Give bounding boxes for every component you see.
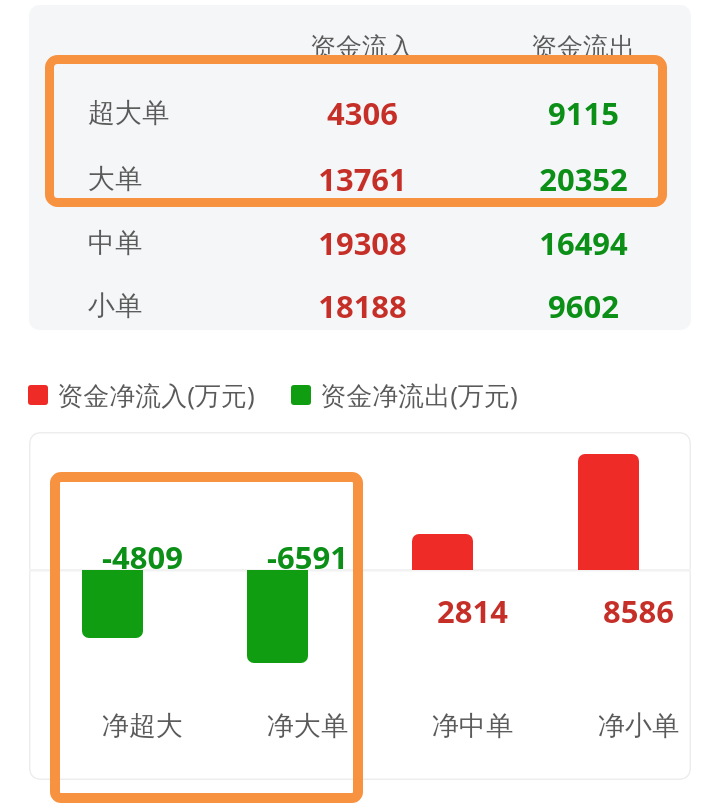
button[interactable]: 中单 bbox=[29, 219, 691, 267]
staticText: 8586 bbox=[603, 590, 674, 632]
staticText: 16494 bbox=[539, 222, 628, 264]
button[interactable]: -4809 bbox=[29, 432, 691, 780]
button[interactable]: 资金流入 bbox=[29, 5, 691, 330]
staticText: 2814 bbox=[437, 590, 508, 632]
staticText: 资金流出 bbox=[531, 31, 635, 64]
staticText: 大单 bbox=[88, 162, 142, 196]
staticText: -4809 bbox=[102, 536, 183, 578]
staticText: 19308 bbox=[318, 222, 407, 264]
staticText: -6591 bbox=[267, 536, 348, 578]
button[interactable]: Highlight super-large and large order ro… bbox=[45, 55, 667, 207]
staticText: 13761 bbox=[318, 158, 407, 200]
staticText: 净超大 bbox=[102, 709, 183, 743]
staticText: 4306 bbox=[327, 92, 398, 134]
staticText: 超大单 bbox=[88, 96, 169, 130]
staticText: 18188 bbox=[318, 285, 407, 327]
staticText: 小单 bbox=[88, 289, 142, 323]
staticText: 资金流入 bbox=[310, 31, 414, 64]
button[interactable]: 超大单 bbox=[29, 89, 691, 137]
staticText: 20352 bbox=[539, 158, 628, 200]
staticText: 净小单 bbox=[598, 709, 679, 743]
staticText: 中单 bbox=[88, 226, 142, 260]
staticText: 净大单 bbox=[267, 709, 348, 743]
button[interactable]: 小单 bbox=[29, 282, 691, 330]
button[interactable]: 资金净流入(万元) bbox=[28, 377, 518, 413]
button[interactable]: Highlight net super-large and net large … bbox=[50, 472, 363, 803]
staticText: 资金净流出(万元) bbox=[320, 377, 518, 413]
staticText: 资金净流入(万元) bbox=[57, 377, 255, 413]
staticText: 净中单 bbox=[432, 709, 513, 743]
staticText: 9602 bbox=[548, 285, 619, 327]
button[interactable]: 大单 bbox=[29, 155, 691, 203]
staticText: 9115 bbox=[548, 92, 619, 134]
